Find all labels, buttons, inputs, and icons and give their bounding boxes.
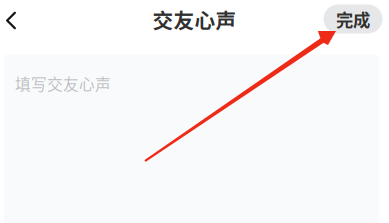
staticText: 交友心声 bbox=[152, 4, 236, 34]
button[interactable]: 完成 bbox=[323, 4, 382, 33]
button[interactable]: Back bbox=[0, 3, 22, 37]
staticText: 填写交友心声 bbox=[15, 72, 111, 95]
staticText: 完成 bbox=[336, 6, 370, 32]
